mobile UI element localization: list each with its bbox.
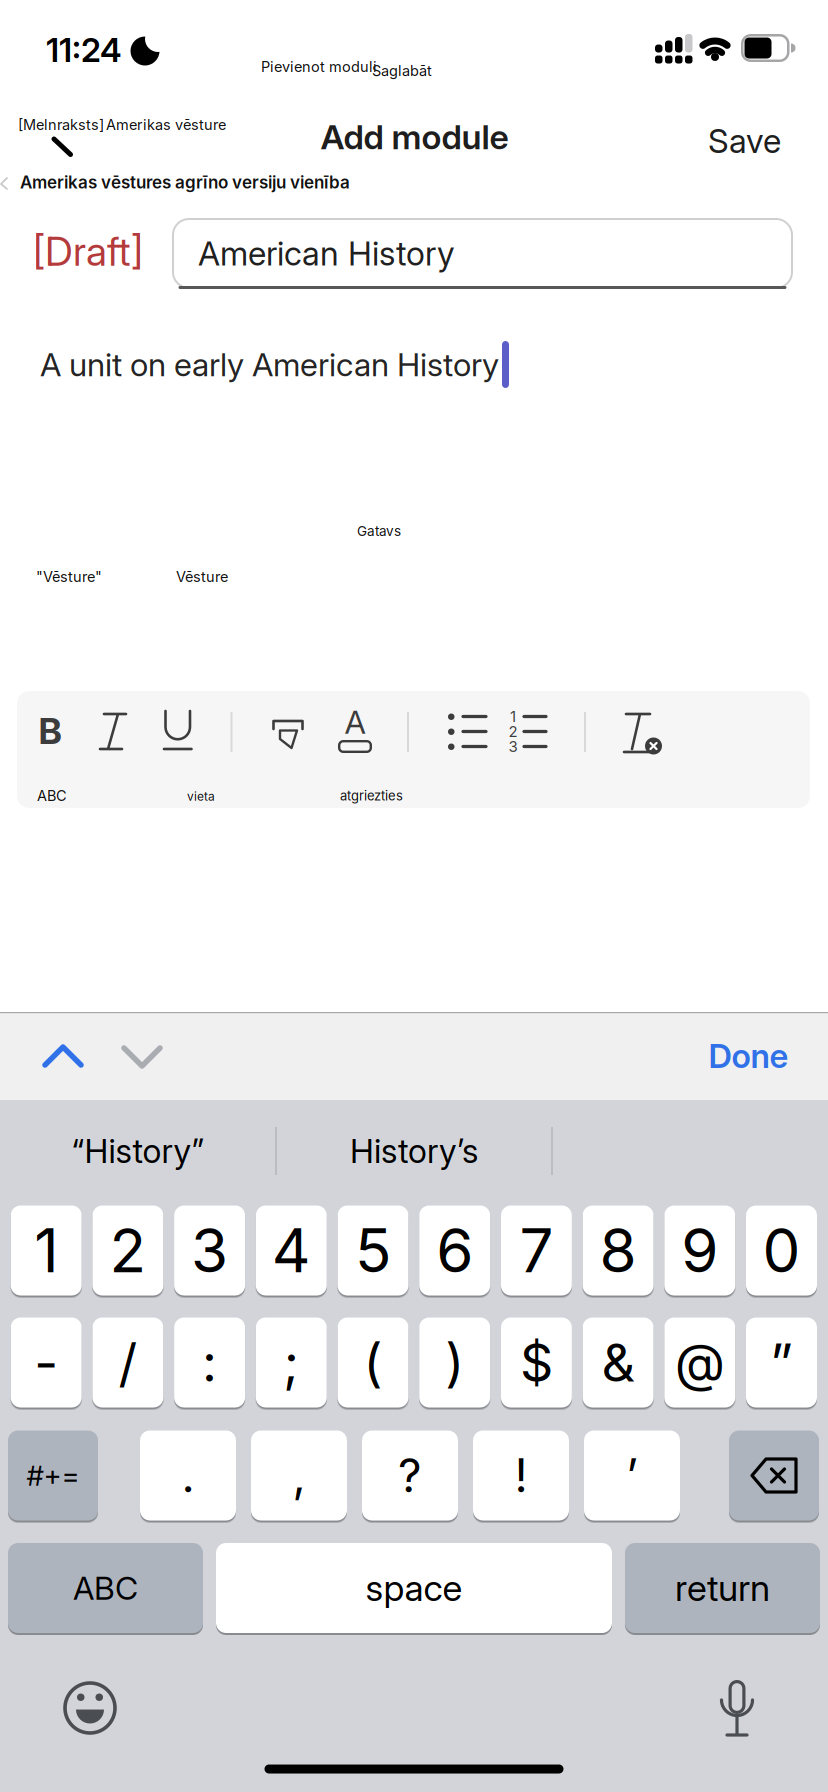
button[interactable]: Delete [729,1430,819,1520]
staticText: ABC [73,1569,138,1607]
button[interactable]: Previous field [34,1036,92,1076]
staticText: atgriezties [340,788,403,804]
button[interactable]: ’ [584,1430,680,1520]
button[interactable]: “History” [71,1131,204,1171]
button[interactable]: 7 [501,1205,572,1295]
staticText: 11:24 [46,30,122,70]
staticText: ABC [37,787,67,804]
button[interactable]: 8 [583,1205,654,1295]
button[interactable]: : [174,1317,245,1407]
staticText: & [602,1331,635,1394]
button[interactable]: Numbered list [502,701,554,761]
staticText: ) [445,1331,464,1394]
staticText: Vēsture [176,568,228,585]
staticText: - [34,1331,58,1394]
button[interactable]: space [216,1543,612,1633]
staticText: ( [363,1331,382,1394]
staticText: 7 [519,1214,553,1287]
button[interactable]: ( [337,1317,408,1407]
staticText: : [202,1331,217,1394]
button[interactable]: ; [256,1317,327,1407]
button[interactable]: 3 [174,1205,245,1295]
staticText: 6 [436,1214,473,1287]
button[interactable]: 6 [419,1205,490,1295]
button[interactable]: Done [708,1036,788,1076]
button[interactable]: 9 [664,1205,735,1295]
staticText: Done [708,1036,788,1076]
staticText: 3 [191,1214,228,1287]
button[interactable]: , [251,1430,347,1520]
staticText: @ [675,1331,725,1394]
staticText: space [365,1566,462,1610]
staticText: 2 [109,1214,146,1287]
button[interactable]: A unit on early American History [40,341,509,388]
staticText: $ [520,1331,553,1394]
button[interactable]: ) [419,1317,490,1407]
staticText: Save [708,121,781,161]
staticText: ’ [626,1448,638,1503]
staticText: History’s [350,1131,478,1171]
staticText: ! [514,1448,527,1503]
staticText: 9 [681,1214,718,1287]
staticText: Amerikas vēstures agrīno versiju vienība [20,172,350,193]
button[interactable]: 4 [256,1205,327,1295]
button[interactable]: Text color [330,701,380,761]
staticText: 4 [272,1214,311,1287]
button[interactable]: Bulleted list [440,701,492,761]
staticText: 2 [508,722,517,740]
button[interactable]: 5 [337,1205,408,1295]
button[interactable]: & [583,1317,654,1407]
staticText: Gatavs [357,523,401,539]
button[interactable]: Dictation [707,1675,767,1741]
button[interactable]: American History [172,218,793,289]
button[interactable]: History’s [350,1131,478,1171]
staticText: . [181,1448,194,1503]
staticText: Amerikas vēsture [106,116,226,133]
staticText: return [675,1566,770,1610]
button[interactable]: return [625,1543,820,1633]
button[interactable]: #+= [8,1430,98,1520]
staticText: 8 [600,1214,637,1287]
staticText: vieta [187,789,215,803]
button[interactable]: - [11,1317,82,1407]
button[interactable]: ? [362,1430,458,1520]
button[interactable]: Save [708,121,781,161]
staticText: 3 [508,737,517,755]
button[interactable]: ABC [8,1543,203,1633]
staticText: 0 [762,1214,800,1287]
staticText: B [38,709,61,753]
button[interactable]: ” [746,1317,817,1407]
staticText: , [292,1448,305,1503]
button[interactable]: Bold [22,701,78,761]
staticText: Pievienot moduli [261,58,377,75]
button[interactable]: Emoji [60,1678,120,1738]
staticText: A unit on early American History [40,345,499,384]
button[interactable]: $ [501,1317,572,1407]
staticText: ? [398,1448,422,1503]
button[interactable]: 0 [746,1205,817,1295]
staticText: ; [283,1331,299,1394]
staticText: 5 [355,1214,391,1287]
staticText: 1 [34,1214,58,1287]
button[interactable]: @ [664,1317,735,1407]
button[interactable]: 2 [92,1205,163,1295]
staticText: / [118,1331,137,1394]
button[interactable]: Clear formatting [614,701,670,761]
staticText: American History [198,233,455,273]
button[interactable]: Next field [113,1037,171,1077]
staticText: 1 [510,707,516,725]
button[interactable]: . [140,1430,236,1520]
button[interactable]: 1 [11,1205,82,1295]
button[interactable]: Underline [153,701,203,761]
staticText: [Melnraksts] [18,116,104,133]
button[interactable]: Highlight [263,701,313,761]
staticText: #+= [26,1459,79,1492]
button[interactable]: Italic [89,701,139,761]
staticText: ” [770,1331,793,1394]
staticText: A [344,703,365,741]
staticText: [Draft] [33,227,143,275]
staticText: Saglabāt [372,62,432,79]
button[interactable]: ! [473,1430,569,1520]
staticText: “History” [71,1131,204,1171]
button[interactable]: / [92,1317,163,1407]
